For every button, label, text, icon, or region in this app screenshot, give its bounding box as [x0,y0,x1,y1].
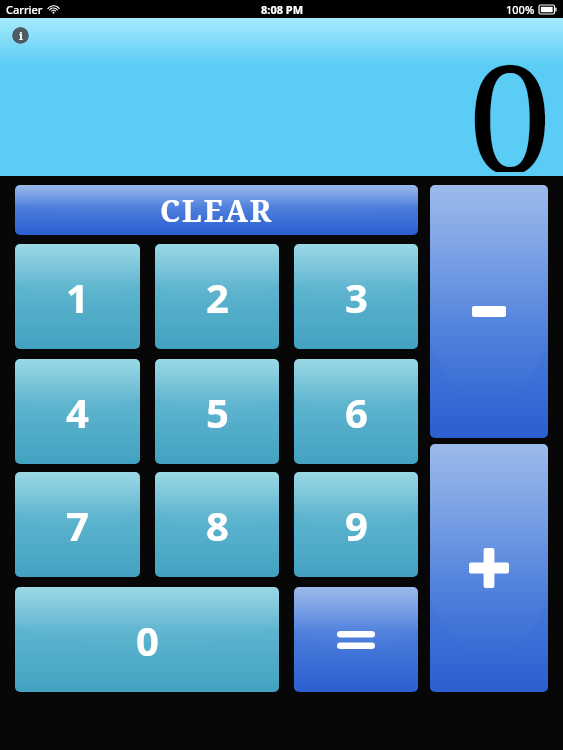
staticText: CLEAR [160,190,274,231]
staticText: 7 [66,498,89,552]
staticText: 3 [345,270,368,324]
button[interactable]: Minus [430,185,548,438]
staticText: 6 [345,385,368,439]
button[interactable]: 8 [155,472,279,577]
button[interactable]: CLEAR [15,185,418,235]
button[interactable]: 9 [294,472,418,577]
staticText: 8 [206,498,229,552]
button[interactable]: Plus [430,444,548,692]
button[interactable]: 2 [155,244,279,349]
staticText: 100% [506,2,535,17]
staticText: 2 [206,270,229,324]
button[interactable]: 6 [294,359,418,464]
button[interactable]: 3 [294,244,418,349]
staticText: 4 [66,385,89,439]
staticText: 8:08 PM [261,2,304,17]
staticText: Carrier [6,2,43,17]
button[interactable]: 1 [15,244,140,349]
button[interactable]: 7 [15,472,140,577]
staticText: 1 [66,270,89,324]
button[interactable]: 4 [15,359,140,464]
button[interactable]: Info [12,27,29,44]
button[interactable]: 5 [155,359,279,464]
staticText: 5 [206,385,229,439]
staticText: 0 [136,613,159,667]
staticText: 9 [345,498,368,552]
button[interactable]: Equals [294,587,418,692]
staticText: i [19,28,23,43]
staticText: 0 [468,14,552,172]
button[interactable]: 0 [15,587,279,692]
